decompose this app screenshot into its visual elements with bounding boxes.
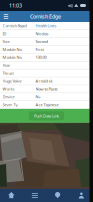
staticText: Nicolas bbox=[35, 31, 48, 36]
staticText: Huge Valve bbox=[2, 78, 21, 84]
button[interactable]: Map bbox=[46, 189, 70, 202]
staticText: 11:03 bbox=[9, 2, 22, 9]
staticText: 130.00 bbox=[35, 55, 46, 60]
staticText: ID bbox=[2, 31, 6, 36]
button[interactable]: Profile bbox=[70, 189, 93, 202]
staticText: Thrust bbox=[2, 70, 13, 76]
staticText: Sever Ty. bbox=[2, 102, 18, 107]
staticText: Year bbox=[2, 62, 10, 68]
button[interactable]: Cornish Rapid bbox=[2, 23, 35, 28]
staticText: Size bbox=[2, 39, 9, 44]
staticText: Health Lines bbox=[35, 23, 56, 28]
staticText: Cornish Rapid bbox=[2, 23, 26, 28]
staticText: Arnold sk bbox=[35, 78, 52, 84]
button[interactable]: Home bbox=[0, 189, 23, 202]
staticText: Works bbox=[2, 86, 14, 91]
staticText: Ace Tapinese bbox=[35, 102, 58, 107]
staticText: Device bbox=[2, 94, 14, 99]
staticText: Now to Paste bbox=[35, 86, 57, 91]
staticText: First bbox=[35, 47, 43, 52]
staticText: Module No. bbox=[2, 55, 22, 60]
staticText: Cornish Edge bbox=[30, 13, 61, 20]
button[interactable]: Menu bbox=[0, 11, 12, 22]
button[interactable]: Push Data Link bbox=[29, 111, 64, 120]
staticText: N+ bbox=[35, 94, 40, 99]
staticText: Second bbox=[35, 39, 47, 44]
staticText: Push Data Link bbox=[34, 113, 59, 118]
staticText: Module No. bbox=[2, 47, 22, 52]
button[interactable]: Health Lines bbox=[35, 23, 56, 28]
button[interactable]: List bbox=[23, 189, 46, 202]
